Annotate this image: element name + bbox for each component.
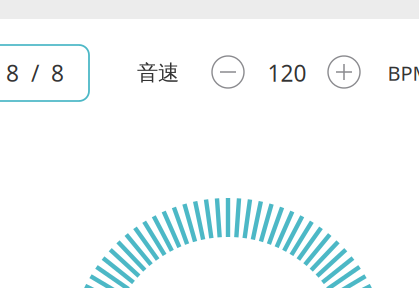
button[interactable]: 8 / 8 [0,45,89,101]
staticText: BPM [387,60,419,86]
staticText: 120 [267,58,306,88]
staticText: 8 / 8 [6,58,64,88]
button[interactable]: Increase tempo [328,56,360,88]
button[interactable]: Decrease tempo [212,56,244,88]
staticText: 音速 [137,60,179,86]
